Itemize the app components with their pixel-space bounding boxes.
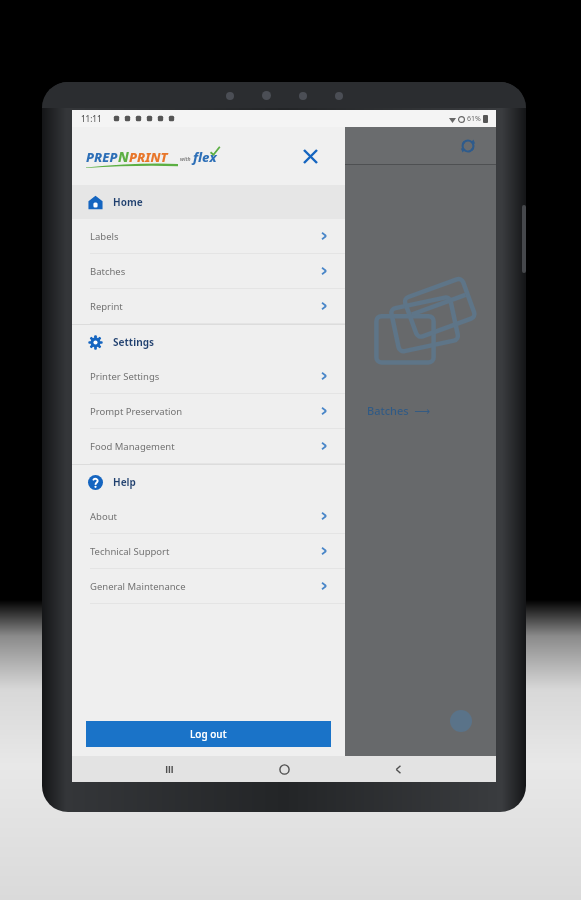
button[interactable]: General Maintenance xyxy=(72,569,345,603)
staticText: Labels xyxy=(90,230,319,243)
button[interactable]: About xyxy=(72,499,345,533)
button[interactable]: Prompt Preservation xyxy=(72,394,345,428)
staticText: 11:11 xyxy=(81,113,102,124)
staticText: Printer Settings xyxy=(90,370,319,383)
staticText: Help xyxy=(113,475,136,489)
button[interactable]: Add xyxy=(450,710,472,732)
button[interactable]: Food Management xyxy=(72,429,345,463)
staticText: General Maintenance xyxy=(90,580,319,593)
staticText: Settings xyxy=(113,335,154,349)
button[interactable]: Home xyxy=(268,756,300,782)
staticText: N xyxy=(118,147,129,166)
staticText: Reprint xyxy=(90,300,319,313)
staticText: PRINT xyxy=(129,148,168,166)
button[interactable]: Close menu xyxy=(297,143,323,169)
button[interactable]: Batches xyxy=(72,254,345,288)
button[interactable]: Refresh xyxy=(458,136,478,156)
staticText: Technical Support xyxy=(90,545,319,558)
staticText: Log out xyxy=(190,727,227,741)
staticText: Home xyxy=(113,195,143,209)
staticText: 61% xyxy=(467,114,481,124)
button[interactable]: Labels xyxy=(72,219,345,253)
button[interactable]: Home xyxy=(72,185,345,219)
staticText: Batches xyxy=(90,265,319,278)
button[interactable]: Recents xyxy=(154,756,186,782)
staticText: flex xyxy=(193,148,217,166)
button[interactable]: Back xyxy=(382,756,414,782)
staticText: Food Management xyxy=(90,440,319,453)
button[interactable]: Printer Settings xyxy=(72,359,345,393)
staticText: PREP xyxy=(86,148,118,166)
staticText: Batches ⟶ xyxy=(367,403,431,418)
button[interactable]: Settings xyxy=(72,325,345,359)
button[interactable]: Log out xyxy=(86,721,331,747)
button[interactable]: Reprint xyxy=(72,289,345,323)
staticText: Prompt Preservation xyxy=(90,405,319,418)
staticText: About xyxy=(90,510,319,523)
button[interactable]: Technical Support xyxy=(72,534,345,568)
button[interactable]: Help xyxy=(72,465,345,499)
staticText: with xyxy=(180,156,191,163)
